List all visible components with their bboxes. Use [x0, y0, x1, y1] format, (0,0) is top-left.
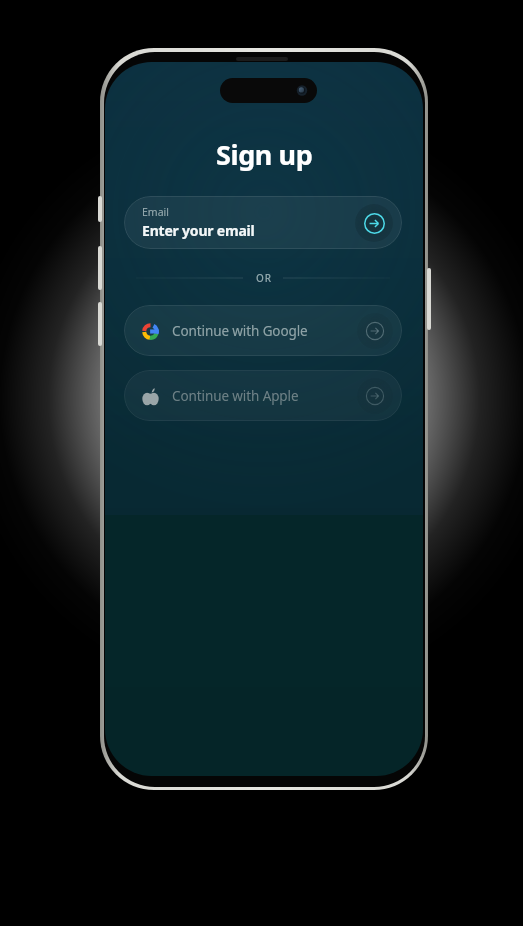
- staticText: Enter your email: [142, 221, 255, 240]
- staticText: Continue with Google: [172, 322, 308, 340]
- staticText: Email: [142, 205, 169, 219]
- staticText: OR: [256, 271, 273, 285]
- button[interactable]: Email: [124, 196, 402, 249]
- button[interactable]: Continue with Apple: [124, 370, 402, 421]
- staticText: Continue with Apple: [172, 387, 299, 405]
- staticText: Sign up: [216, 136, 313, 173]
- button[interactable]: Submit email: [355, 204, 393, 242]
- button[interactable]: Continue with Google: [124, 305, 402, 356]
